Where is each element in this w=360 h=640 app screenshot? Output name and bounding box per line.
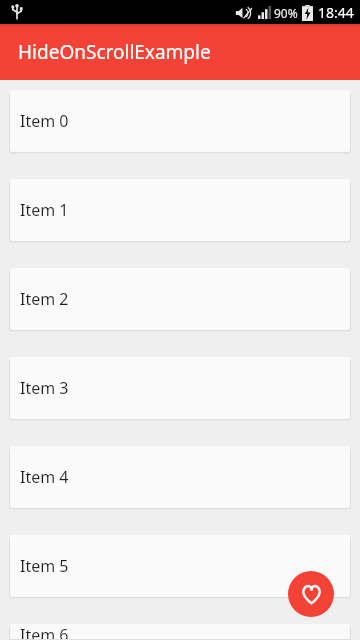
staticText: Item 4 [20, 466, 69, 488]
button[interactable]: Item 2 [10, 268, 350, 330]
staticText: Item 2 [20, 288, 69, 310]
button[interactable]: Item 3 [10, 357, 350, 419]
button[interactable]: Item 1 [10, 179, 350, 241]
button[interactable]: Item 5 [10, 535, 350, 597]
staticText: Item 1 [20, 199, 69, 221]
staticText: 90% [274, 5, 298, 21]
staticText: HideOnScrollExample [18, 39, 211, 65]
staticText: Item 0 [20, 110, 69, 132]
staticText: Item 6 [20, 624, 69, 639]
staticText: Item 5 [20, 555, 69, 577]
button[interactable]: Favorite [288, 571, 334, 617]
button[interactable]: Item 0 [10, 90, 350, 152]
button[interactable]: Item 4 [10, 446, 350, 508]
button[interactable]: Item 6 [10, 624, 350, 639]
staticText: 18:44 [318, 3, 354, 22]
staticText: Item 3 [20, 377, 69, 399]
